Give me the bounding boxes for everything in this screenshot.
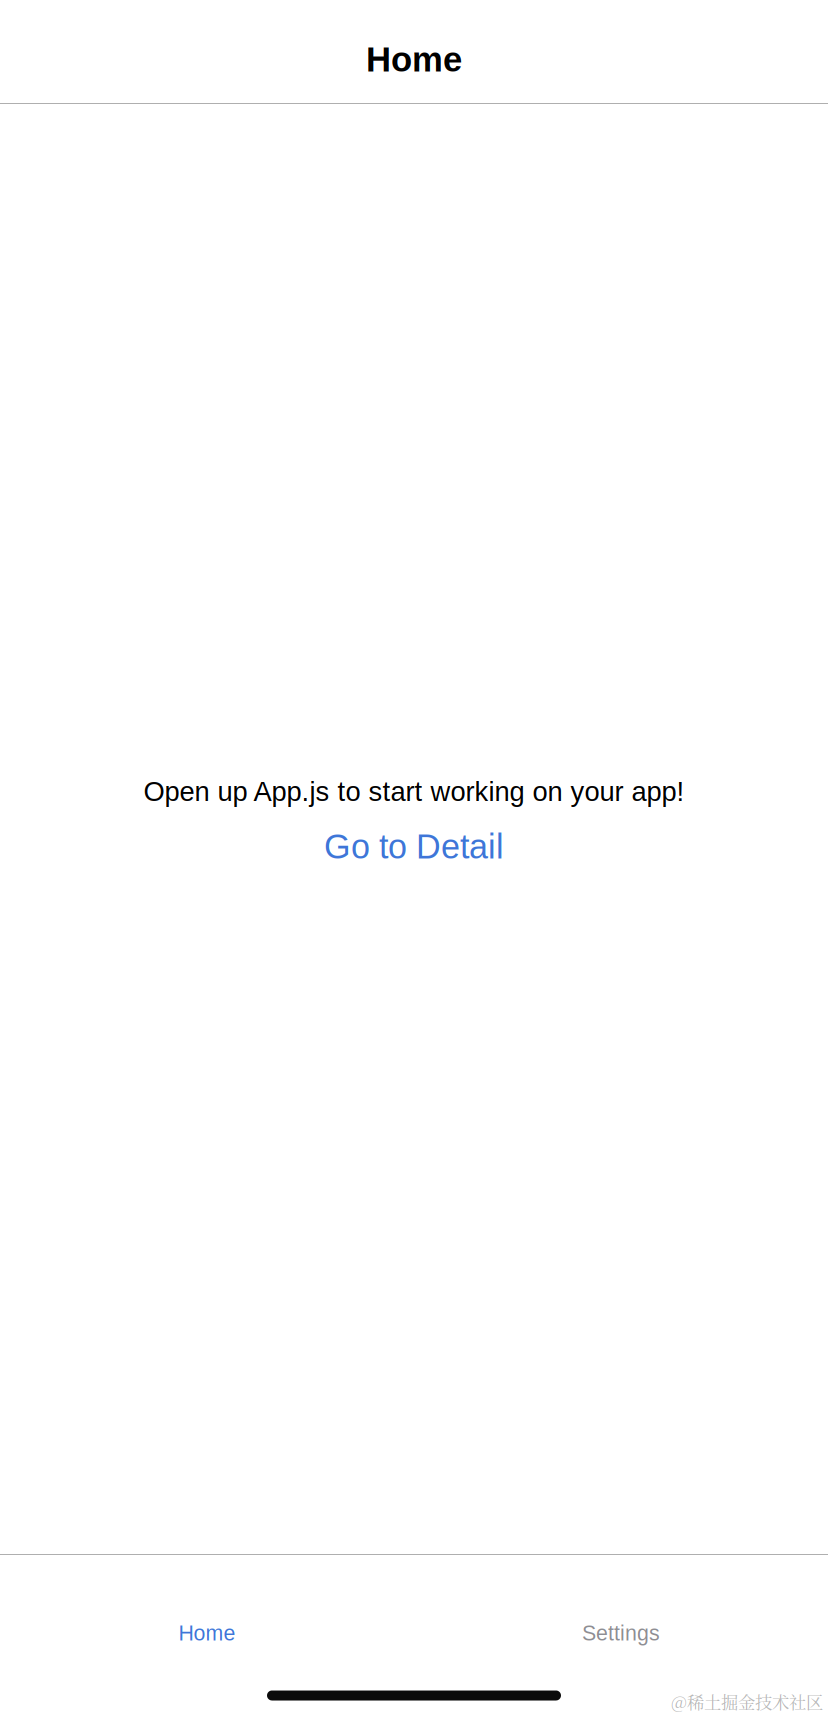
staticText: Home <box>366 40 462 79</box>
button[interactable]: Settings <box>414 1555 828 1653</box>
staticText: Open up App.js to start working on your … <box>143 776 684 807</box>
button[interactable]: Go to Detail <box>324 828 504 866</box>
staticText: Home <box>178 1621 235 1645</box>
staticText: Go to Detail <box>324 828 504 866</box>
staticText: Settings <box>582 1621 660 1645</box>
staticText: @稀土掘金技术社区 <box>671 1689 823 1714</box>
button[interactable]: Home <box>0 1555 414 1653</box>
